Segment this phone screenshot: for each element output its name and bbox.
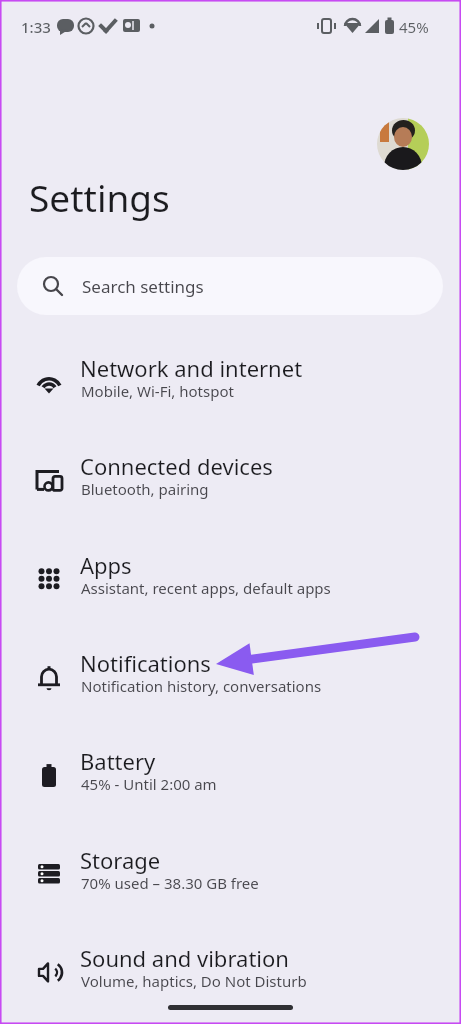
staticText: Assistant, recent apps, default apps [81,578,331,598]
staticText: 45% - Until 2:00 am [81,774,217,794]
staticText: Sound and vibration [80,943,289,973]
staticText: Search settings [82,275,204,298]
staticText: Connected devices [80,451,273,481]
staticText: Apps [80,550,132,580]
staticText: Battery [80,746,156,776]
staticText: 45% [399,17,429,37]
staticText: Notifications [80,648,211,678]
staticText: Storage [80,845,161,875]
staticText: Volume, haptics, Do Not Disturb [81,971,307,991]
staticText: 70% used – 38.30 GB free [81,873,259,893]
staticText: 1:33 [21,17,51,37]
staticText: Notification history, conversations [81,676,322,696]
staticText: Mobile, Wi-Fi, hotspot [81,381,234,401]
staticText: Network and internet [80,353,303,383]
staticText: Settings [29,172,170,222]
staticText: Bluetooth, pairing [81,479,209,499]
